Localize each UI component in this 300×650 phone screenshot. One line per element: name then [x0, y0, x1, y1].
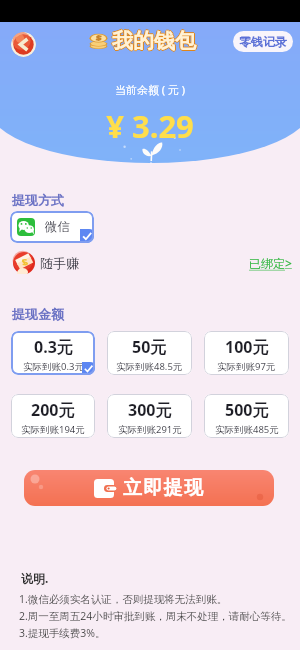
- button[interactable]: 300元: [107, 394, 192, 438]
- button[interactable]: 500元: [204, 394, 289, 438]
- staticText: 随手赚: [40, 255, 79, 271]
- staticText: 50元: [132, 336, 167, 358]
- button[interactable]: 50元: [107, 331, 192, 375]
- staticText: 说明.: [21, 570, 49, 586]
- button[interactable]: 200元: [11, 394, 95, 438]
- staticText: 微信: [45, 219, 70, 235]
- staticText: 当前余额 ( 元 ): [0, 82, 300, 97]
- button[interactable]: 立即提现: [24, 470, 274, 506]
- staticText: 我的钱包: [111, 28, 195, 54]
- staticText: 实际到账485元: [215, 423, 279, 436]
- button[interactable]: Back: [11, 32, 36, 57]
- staticText: 提现方式: [12, 192, 64, 208]
- button[interactable]: 0.3元: [11, 331, 95, 375]
- staticText: 我的钱包: [112, 27, 196, 53]
- button[interactable]: 微信: [10, 211, 94, 243]
- staticText: 我的钱包: [112, 29, 196, 55]
- staticText: 提现金额: [12, 306, 64, 322]
- staticText: 2.周一至周五24小时审批到账，周末不处理，请耐心等待。: [19, 609, 292, 623]
- staticText: 立即提现: [123, 476, 205, 500]
- staticText: 100元: [225, 336, 269, 358]
- staticText: 1.微信必须实名认证，否则提现将无法到账。: [19, 592, 228, 606]
- staticText: 实际到账48.5元: [116, 360, 183, 373]
- button[interactable]: 零钱记录: [233, 31, 293, 52]
- staticText: 0.3元: [34, 336, 73, 358]
- staticText: 实际到账194元: [21, 423, 85, 436]
- staticText: 实际到账0.3元: [23, 360, 84, 373]
- staticText: 200元: [31, 399, 75, 421]
- staticText: 实际到账97元: [217, 360, 276, 373]
- staticText: 已绑定>: [249, 255, 292, 271]
- staticText: 我的钱包: [112, 28, 196, 54]
- staticText: 3.提现手续费3%。: [19, 626, 106, 640]
- staticText: ¥ 3.29: [0, 105, 300, 147]
- staticText: 300元: [128, 399, 172, 421]
- staticText: 零钱记录: [239, 34, 287, 49]
- button[interactable]: 已绑定>: [249, 255, 292, 271]
- staticText: 我的钱包: [113, 28, 197, 54]
- staticText: 实际到账291元: [118, 423, 182, 436]
- staticText: 500元: [225, 399, 269, 421]
- button[interactable]: 100元: [204, 331, 289, 375]
